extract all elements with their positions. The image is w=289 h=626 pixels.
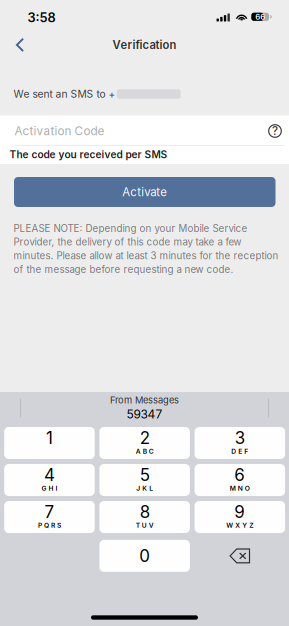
- staticText: 3: [235, 428, 245, 448]
- staticText: 66: [255, 12, 265, 21]
- staticText: 59347: [126, 407, 162, 421]
- staticText: 0: [139, 546, 150, 566]
- staticText: J K L: [136, 484, 153, 492]
- button[interactable]: 2: [99, 427, 190, 459]
- button[interactable]: Activate: [14, 177, 275, 207]
- staticText: We sent an SMS to +: [13, 88, 115, 100]
- staticText: 3:58: [27, 10, 55, 25]
- staticText: Activation Code: [14, 124, 104, 138]
- staticText: T U V: [136, 521, 154, 529]
- staticText: W X Y Z: [226, 521, 253, 529]
- staticText: D E F: [231, 447, 248, 455]
- staticText: A B C: [136, 447, 154, 455]
- button[interactable]: 4: [4, 464, 95, 496]
- button[interactable]: 7: [4, 501, 95, 533]
- staticText: 4: [44, 465, 55, 485]
- staticText: 8: [140, 502, 150, 522]
- staticText: PLEASE NOTE: Depending on your Mobile Se…: [13, 222, 278, 275]
- staticText: 2: [140, 428, 150, 448]
- button[interactable]: From Messages: [69, 394, 219, 422]
- staticText: P Q R S: [38, 521, 61, 529]
- staticText: 9: [234, 502, 245, 522]
- staticText: G H I: [41, 484, 57, 492]
- staticText: ?: [272, 124, 278, 138]
- button[interactable]: 1: [4, 427, 95, 459]
- staticText: From Messages: [110, 394, 179, 406]
- button[interactable]: 0: [99, 540, 190, 572]
- staticText: 7: [44, 502, 54, 522]
- staticText: Verification: [112, 38, 176, 52]
- staticText: Activate: [122, 185, 167, 199]
- staticText: 5: [140, 465, 150, 485]
- staticText: 6: [234, 465, 245, 485]
- staticText: The code you received per SMS: [9, 148, 167, 161]
- button[interactable]: 8: [99, 501, 190, 533]
- staticText: 1: [46, 428, 53, 448]
- button[interactable]: Delete: [195, 540, 285, 572]
- button[interactable]: 9: [195, 501, 285, 533]
- button[interactable]: Back: [3, 30, 37, 60]
- button[interactable]: 5: [99, 464, 190, 496]
- button[interactable]: 3: [195, 427, 285, 459]
- staticText: M N O: [230, 484, 250, 492]
- button[interactable]: 6: [195, 464, 285, 496]
- button[interactable]: Help: [262, 118, 288, 144]
